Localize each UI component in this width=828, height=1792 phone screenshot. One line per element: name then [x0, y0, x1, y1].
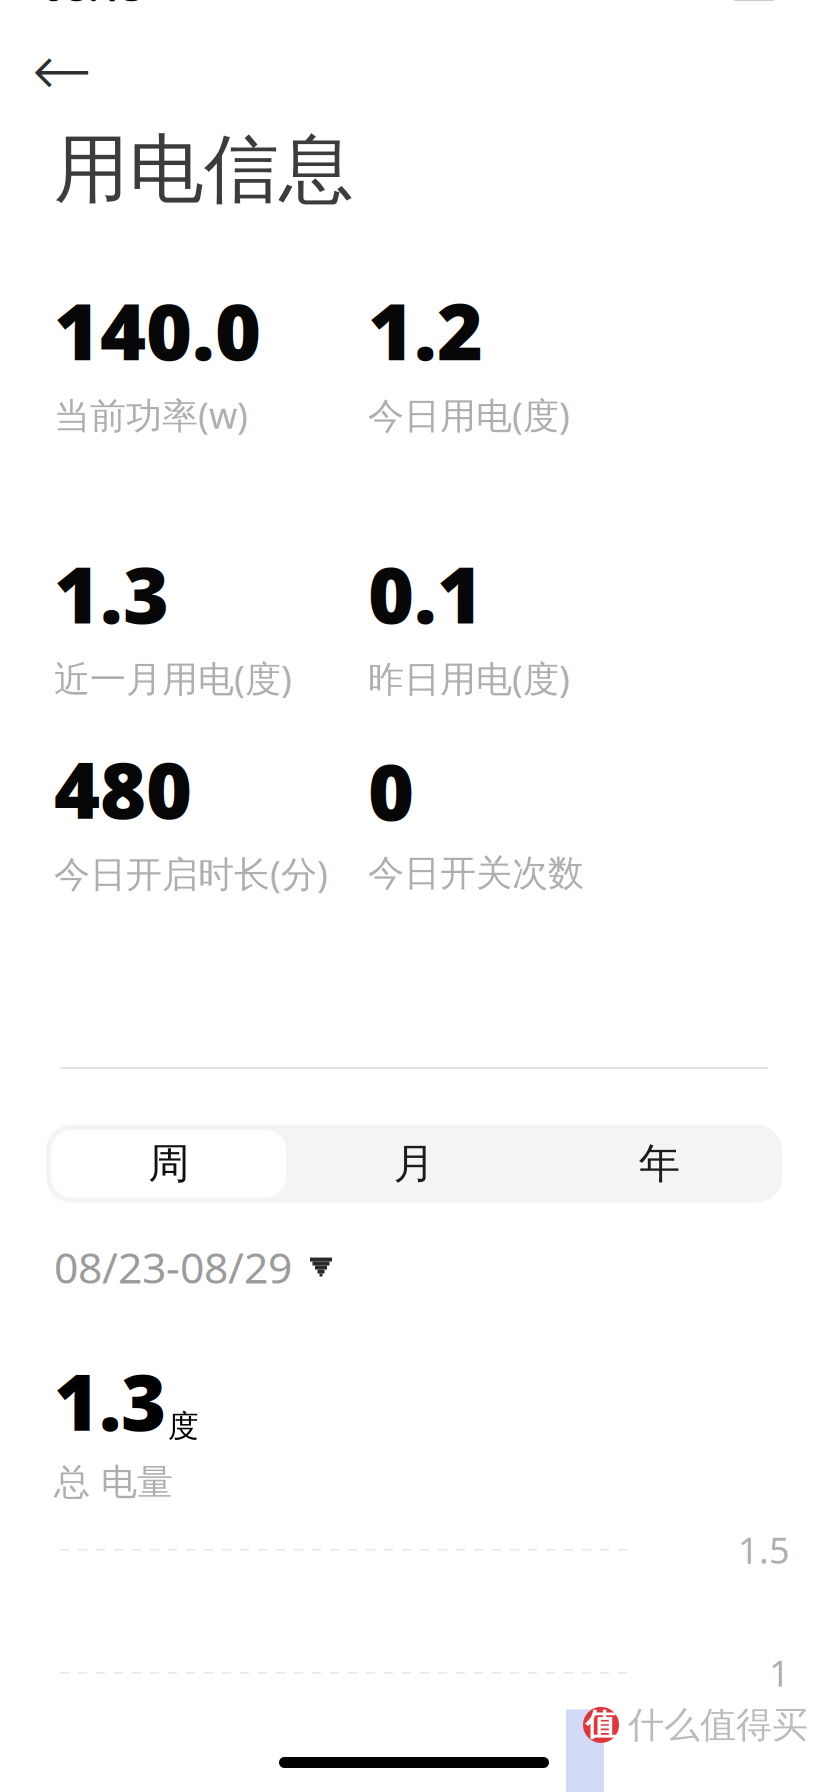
staticText: ←: [32, 30, 92, 111]
staticText: 当前功率(w): [54, 391, 248, 439]
staticText: 总 电量: [54, 1460, 173, 1504]
staticText: 昨日用电(度): [368, 654, 570, 702]
button[interactable]: 周: [46, 1125, 291, 1203]
staticText: 08/23-08/29: [54, 1239, 292, 1295]
staticText: 今日用电(度): [368, 391, 570, 439]
button[interactable]: 年: [537, 1125, 782, 1203]
staticText: 年: [639, 1138, 680, 1189]
staticText: 140.0: [54, 277, 261, 382]
staticText: 0: [368, 738, 414, 842]
staticText: 今日开关次数: [368, 851, 584, 895]
staticText: 100: [730, 0, 778, 4]
staticText: 今日开启时长(分): [54, 849, 328, 897]
staticText: 08:15: [42, 0, 145, 12]
staticText: 月: [393, 1138, 434, 1189]
staticText: 1: [769, 1649, 790, 1697]
staticText: 480: [54, 736, 192, 840]
staticText: 近一月用电(度): [54, 654, 292, 702]
staticText: 0.1: [368, 541, 483, 645]
staticText: 1.3: [54, 1349, 166, 1452]
button[interactable]: 月: [291, 1125, 537, 1203]
staticText: 1.2: [368, 277, 483, 382]
staticText: 值: [585, 1706, 616, 1744]
staticText: 1.3: [54, 541, 169, 645]
staticText: 1.5: [738, 1526, 790, 1574]
staticText: 度: [168, 1407, 199, 1445]
staticText: 用电信息: [54, 124, 354, 215]
staticText: 周: [148, 1138, 189, 1189]
button[interactable]: 08/23-08/29: [54, 1233, 332, 1301]
button[interactable]: Back: [20, 34, 104, 108]
staticText: 什么值得买: [628, 1703, 808, 1747]
